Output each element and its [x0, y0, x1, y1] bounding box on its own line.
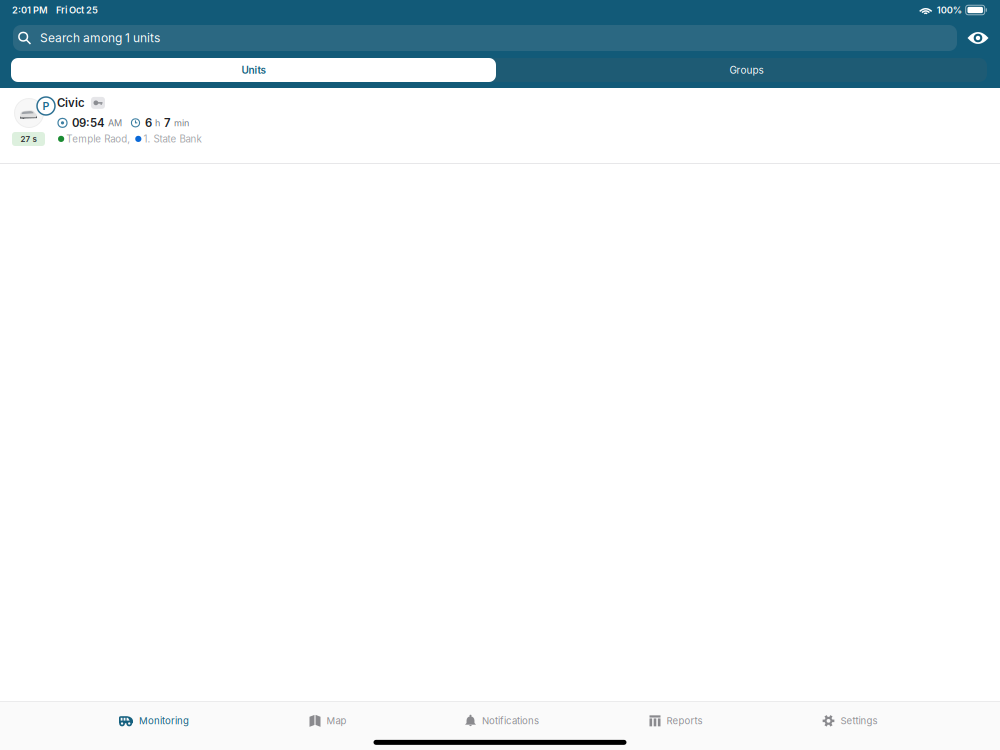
staticText: Reports [666, 715, 702, 727]
staticText: P [42, 99, 49, 112]
staticText: Civic [57, 96, 85, 110]
staticText: Units [241, 64, 265, 76]
staticText: min [174, 117, 189, 128]
staticText: 27 s [20, 134, 36, 144]
button[interactable]: Units [11, 58, 496, 82]
button[interactable]: Show on map [963, 25, 993, 51]
staticText: AM [108, 117, 122, 128]
staticText: Notifications [482, 715, 539, 727]
staticText: Settings [840, 715, 877, 727]
button[interactable]: P [0, 88, 1000, 163]
button[interactable]: Map [241, 702, 415, 740]
staticText: Search among 1 units [40, 31, 160, 45]
staticText: 6 [145, 116, 152, 130]
staticText: 09:54 [72, 116, 105, 130]
staticText: h [155, 117, 160, 128]
button[interactable]: Settings [763, 702, 937, 740]
button[interactable]: Search among 1 units [13, 25, 957, 51]
staticText: Groups [729, 64, 763, 76]
staticText: Fri Oct 25 [56, 4, 98, 16]
staticText: Monitoring [139, 715, 189, 727]
button[interactable]: Monitoring [67, 702, 241, 740]
button[interactable]: Notifications [415, 702, 589, 740]
staticText: Map [326, 715, 346, 727]
button[interactable]: Reports [589, 702, 763, 740]
button[interactable]: Groups [504, 58, 989, 82]
staticText: 1. State Bank [143, 133, 201, 145]
staticText: 100% [937, 4, 962, 16]
staticText: 2:01 PM [12, 4, 48, 16]
staticText: Temple Raod, [66, 133, 130, 145]
staticText: 7 [164, 116, 171, 130]
